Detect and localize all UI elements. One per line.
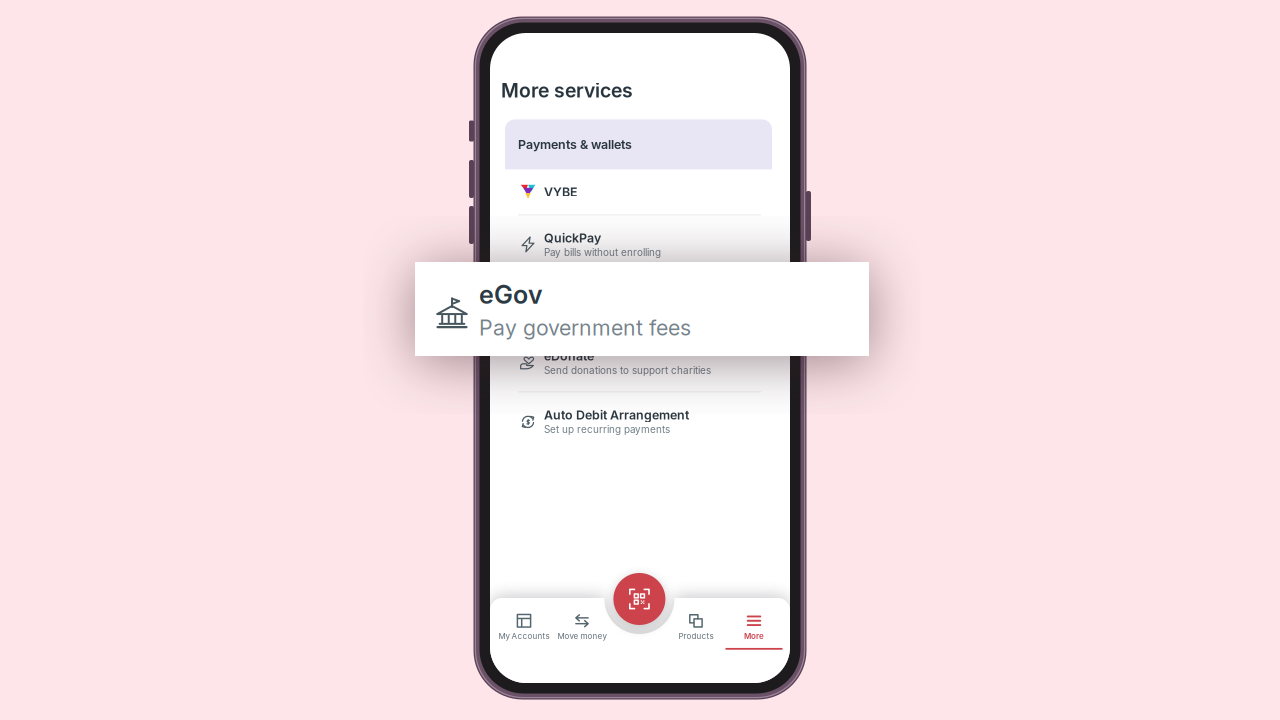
staticText: Payments & wallets	[518, 137, 632, 152]
staticText: My Accounts	[498, 631, 549, 641]
staticText: QuickPay	[544, 230, 601, 245]
button[interactable]: Move money	[542, 607, 622, 655]
staticText: eGov	[479, 279, 543, 310]
staticText: Send donations to support charities	[544, 364, 711, 376]
staticText: eDonate	[544, 348, 594, 363]
staticText: Move money	[557, 631, 606, 641]
button[interactable]: eDonate	[505, 333, 772, 391]
staticText: Products	[678, 631, 713, 641]
button[interactable]: More	[714, 607, 794, 655]
button[interactable]: eGov	[505, 274, 772, 332]
staticText: More	[744, 631, 764, 641]
staticText: Pay bills without enrolling	[544, 246, 661, 258]
button[interactable]: Auto Debit Arrangement	[505, 392, 772, 450]
button[interactable]: VYBE	[505, 169, 772, 214]
staticText: Pay government fees	[479, 315, 691, 341]
staticText: Set up recurring payments	[544, 423, 670, 435]
staticText: More services	[501, 79, 633, 102]
staticText: Auto Debit Arrangement	[544, 407, 689, 422]
button[interactable]: QuickPay	[505, 215, 772, 273]
staticText: VYBE	[544, 184, 578, 199]
button[interactable]: My Accounts	[484, 607, 564, 655]
button[interactable]: Scan QR code	[613, 573, 665, 625]
button[interactable]: Products	[656, 607, 736, 655]
